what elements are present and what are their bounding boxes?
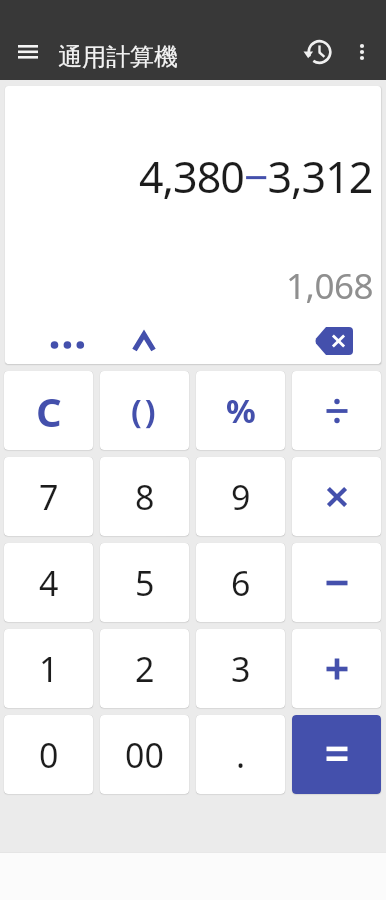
staticText: 3 [231, 646, 251, 692]
button[interactable]: 8 [100, 457, 189, 536]
button[interactable] [0, 24, 56, 80]
staticText: 通用計算機 [58, 42, 178, 72]
button[interactable] [342, 32, 382, 72]
staticText: 7 [39, 474, 59, 520]
button[interactable]: 4 [4, 543, 93, 622]
staticText: 2 [135, 646, 155, 692]
button[interactable]: % [196, 371, 285, 450]
button[interactable]: . [196, 715, 285, 794]
button[interactable]: 0 [4, 715, 93, 794]
staticText: 4 [39, 560, 59, 606]
button[interactable]: 2 [100, 629, 189, 708]
button[interactable]: () [100, 371, 189, 450]
button[interactable] [292, 629, 381, 708]
staticText: 6 [231, 560, 251, 606]
staticText: 8 [135, 474, 155, 520]
button[interactable]: 9 [196, 457, 285, 536]
button[interactable] [45, 330, 105, 360]
staticText: 00 [125, 732, 164, 778]
staticText: 4,380−3,312 [139, 147, 373, 206]
staticText: 1 [39, 646, 59, 692]
staticText: 9 [231, 474, 251, 520]
button[interactable]: 7 [4, 457, 93, 536]
button[interactable] [294, 28, 342, 76]
staticText: 0 [39, 732, 59, 778]
staticText: 5 [135, 560, 155, 606]
staticText: % [226, 388, 256, 433]
button[interactable]: 5 [100, 543, 189, 622]
button[interactable]: 00 [100, 715, 189, 794]
button[interactable] [292, 543, 381, 622]
button[interactable] [313, 324, 355, 358]
button[interactable]: 6 [196, 543, 285, 622]
button[interactable] [292, 457, 381, 536]
button[interactable] [292, 715, 381, 794]
staticText: 1,068 [286, 262, 373, 310]
staticText: () [131, 389, 159, 433]
button[interactable] [292, 371, 381, 450]
button[interactable]: 1 [4, 629, 93, 708]
button[interactable]: 3 [196, 629, 285, 708]
staticText: C [36, 384, 62, 438]
button[interactable] [124, 324, 164, 360]
button[interactable]: C [4, 371, 93, 450]
staticText: . [236, 732, 246, 778]
